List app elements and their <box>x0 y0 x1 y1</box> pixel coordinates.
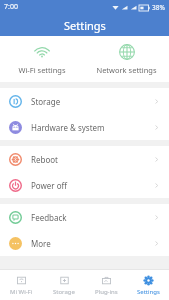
staticText: Reboot <box>31 154 58 165</box>
button[interactable]: More <box>0 230 169 256</box>
staticText: 38% <box>152 3 165 12</box>
button[interactable]: Network settings <box>84 36 169 82</box>
staticText: Power off <box>31 180 68 191</box>
staticText: Plug-ins <box>95 288 118 296</box>
button[interactable]: Power off <box>0 172 169 198</box>
staticText: Feedback <box>31 212 67 223</box>
staticText: Storage <box>31 96 61 107</box>
staticText: Settings <box>137 288 160 296</box>
button[interactable]: Feedback <box>0 204 169 230</box>
staticText: Hardware & system <box>31 122 105 133</box>
staticText: Mi Wi-Fi <box>10 288 33 296</box>
button[interactable]: Plug-ins <box>85 270 127 300</box>
staticText: Settings <box>64 18 106 33</box>
button[interactable]: Storage <box>0 88 169 114</box>
staticText: Storage <box>53 288 75 296</box>
button[interactable]: Reboot <box>0 146 169 172</box>
staticText: Wi-Fi settings <box>18 65 66 75</box>
button[interactable]: Wi-Fi settings <box>0 36 84 82</box>
button[interactable]: Mi Wi-Fi <box>0 270 43 300</box>
button[interactable]: Storage <box>43 270 85 300</box>
staticText: 7:00 <box>4 2 18 12</box>
button[interactable]: Hardware & system <box>0 114 169 140</box>
button[interactable]: Settings <box>127 270 169 300</box>
staticText: Network settings <box>96 65 157 75</box>
staticText: More <box>31 238 51 249</box>
